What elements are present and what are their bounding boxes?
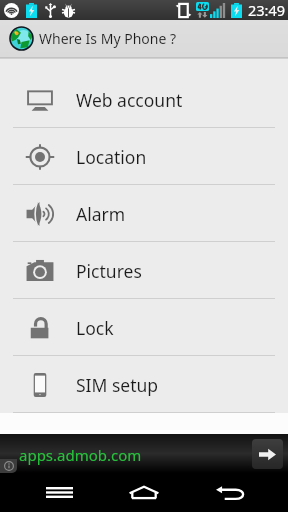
button[interactable]: Menu (38, 473, 80, 512)
staticText: Alarm (76, 202, 126, 226)
button[interactable]: Open ad (252, 439, 283, 469)
button[interactable]: Pictures (0, 242, 288, 299)
button[interactable]: Back (209, 473, 251, 512)
staticText: SIM setup (76, 373, 159, 397)
button[interactable]: SIM setup (0, 356, 288, 413)
button[interactable]: Alarm (0, 185, 288, 242)
button[interactable]: Home (122, 473, 166, 512)
staticText: Lock (76, 316, 114, 340)
staticText: Location (76, 145, 147, 169)
button[interactable]: Web account (0, 71, 288, 128)
button[interactable]: Location (0, 128, 288, 185)
button[interactable]: Lock (0, 299, 288, 356)
staticText: 23:49 (248, 0, 286, 20)
staticText: apps.admob.com (19, 445, 142, 465)
staticText: Where Is My Phone ? (39, 29, 177, 48)
staticText: Web account (76, 88, 183, 112)
button[interactable]: Ad info (0, 459, 17, 473)
button[interactable]: apps.admob.com (0, 434, 288, 473)
staticText: Pictures (76, 259, 142, 283)
